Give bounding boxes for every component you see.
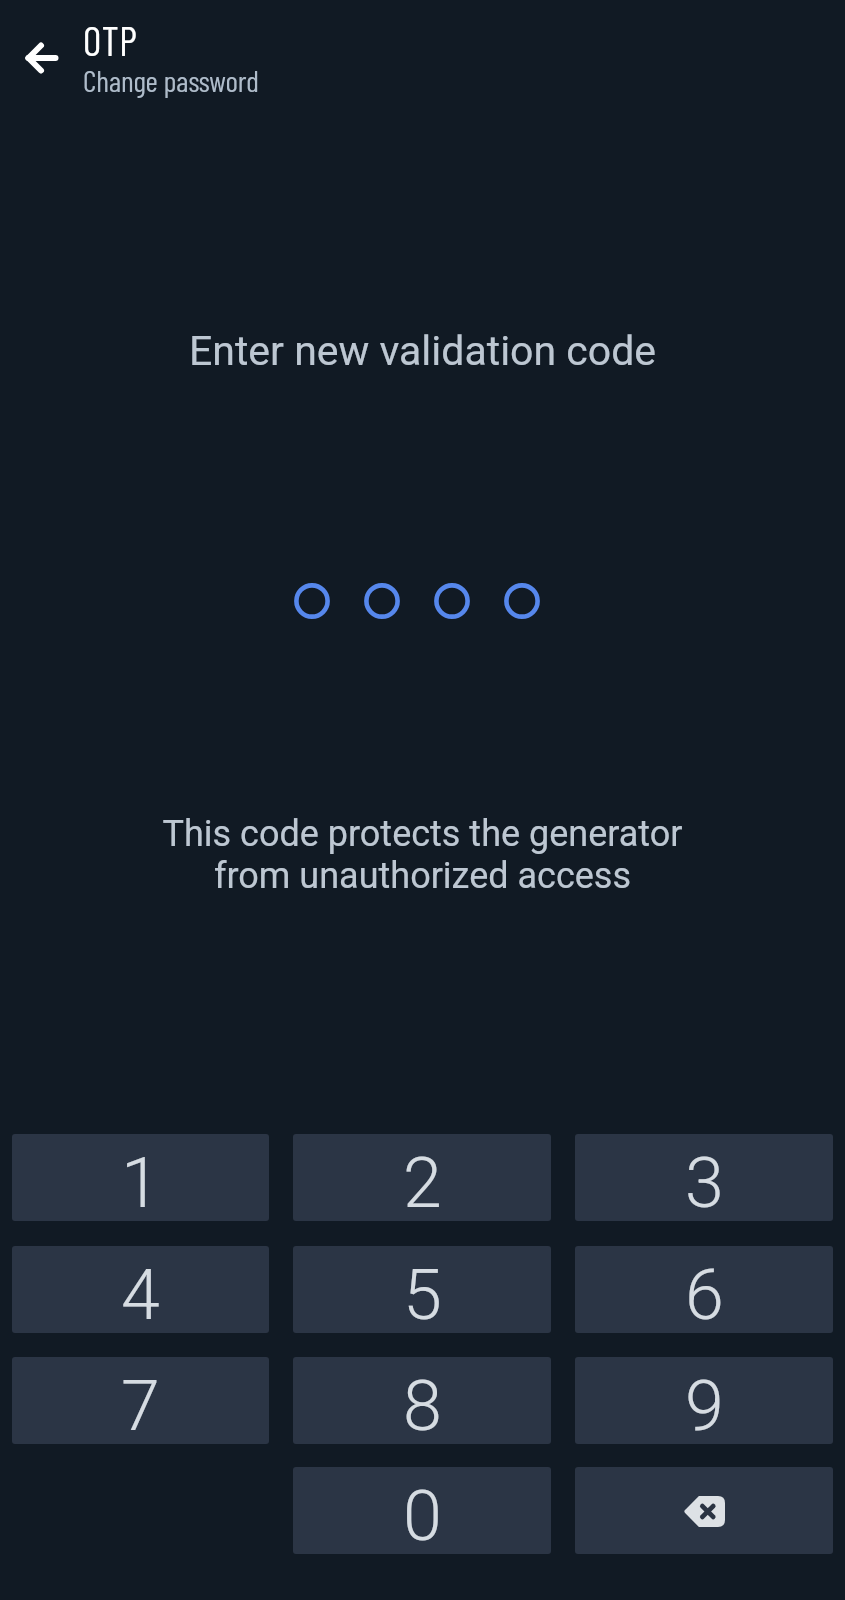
button[interactable]: 2: [293, 1134, 551, 1221]
staticText: 7: [121, 1365, 160, 1444]
staticText: 4: [121, 1254, 160, 1333]
staticText: 3: [685, 1142, 724, 1221]
button[interactable]: 0: [293, 1467, 551, 1554]
staticText: 5: [403, 1254, 442, 1333]
button[interactable]: 4: [12, 1246, 269, 1333]
staticText: 2: [403, 1142, 442, 1221]
staticText: Change password: [83, 62, 259, 98]
staticText: OTP: [83, 16, 138, 64]
staticText: 9: [685, 1365, 724, 1444]
staticText: 1: [121, 1142, 160, 1221]
staticText: 0: [403, 1475, 442, 1554]
button[interactable]: 1: [12, 1134, 269, 1221]
button[interactable]: Back: [10, 26, 74, 90]
button[interactable]: 6: [575, 1246, 833, 1333]
button[interactable]: Backspace: [575, 1467, 833, 1554]
staticText: Enter new validation code: [0, 327, 845, 375]
button[interactable]: 3: [575, 1134, 833, 1221]
button[interactable]: 8: [293, 1357, 551, 1444]
button[interactable]: 5: [293, 1246, 551, 1333]
staticText: This code protects the generator from un…: [0, 813, 845, 897]
staticText: 8: [403, 1365, 442, 1444]
button[interactable]: 9: [575, 1357, 833, 1444]
staticText: 6: [685, 1254, 724, 1333]
button[interactable]: 7: [12, 1357, 269, 1444]
